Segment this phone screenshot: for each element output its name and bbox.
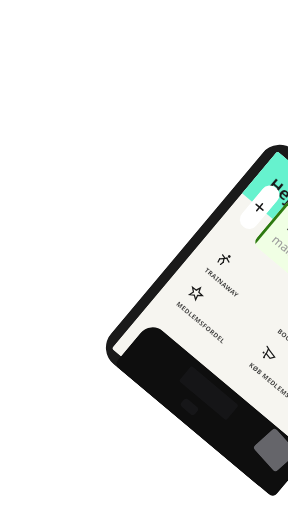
button[interactable]: KØB MEDLEMSKAB xyxy=(242,343,288,433)
staticText: Hej Mikkel xyxy=(264,173,288,249)
staticText: MEDLEMSFORDEL xyxy=(174,299,228,346)
button[interactable]: BOOK TID xyxy=(270,309,288,399)
button[interactable]: Add xyxy=(236,182,283,233)
button[interactable]: TRAINAWAY xyxy=(198,248,288,338)
staticText: mar. xyxy=(269,231,288,259)
staticText: KØB MEDLEMSKAB xyxy=(247,360,288,409)
staticText: 12 xyxy=(279,212,288,244)
button[interactable]: 12 xyxy=(252,199,288,352)
staticText: TRAINAWAY xyxy=(203,266,241,299)
staticText: BOOK TID xyxy=(276,327,288,356)
button[interactable]: MEDLEMSFORDEL xyxy=(169,282,266,371)
